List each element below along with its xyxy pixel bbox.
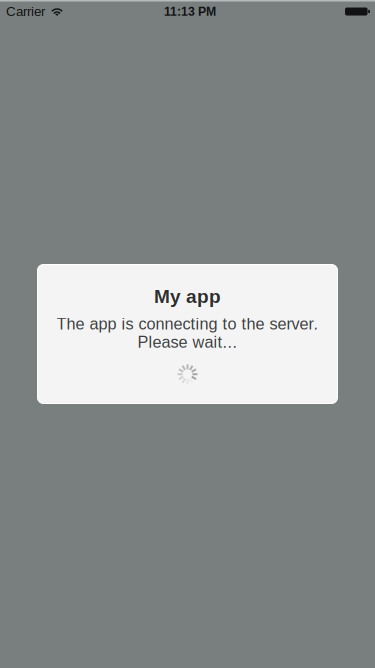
staticText: Carrier <box>6 4 45 19</box>
staticText: My app <box>154 286 221 307</box>
staticText: The app is connecting to the server. <box>56 315 318 333</box>
staticText: Please wait... <box>137 333 237 351</box>
staticText: 11:13 PM <box>164 5 216 18</box>
